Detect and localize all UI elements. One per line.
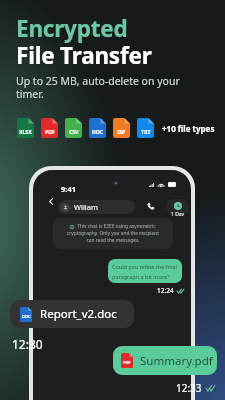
staticText: Summary.pdf [140,353,213,369]
button[interactable]: DOC [10,300,134,328]
staticText: TXT [141,128,151,135]
button[interactable]: Back [46,196,56,206]
staticText: paragraph a bit more? [112,273,170,280]
button[interactable]: Call [144,199,158,213]
staticText: 12:30 [12,336,43,352]
staticText: 12:33 [176,381,202,395]
staticText: DOC [22,314,31,319]
staticText: 12:24 [157,286,174,295]
staticText: Could you refine the final [112,263,178,270]
button[interactable]: Wiliam [58,200,135,214]
staticText: PDF [45,128,55,135]
staticText: PDF [123,360,131,365]
staticText: Wiliam [74,202,98,212]
button[interactable]: PDF [113,346,217,375]
staticText: XLSX [19,128,32,135]
staticText: 1 Day [171,211,185,216]
staticText: ZIP [117,128,126,135]
staticText: Up to 25 MB, auto-delete on your timer. [16,74,180,101]
staticText: File Transfer [16,40,152,71]
staticText: +10 file types [162,123,215,134]
staticText: can read the messages. [86,237,140,244]
staticText: DOC [92,128,104,135]
staticText: Report_v2.doc [40,306,117,322]
staticText: Encrypted [16,13,128,44]
staticText: cryptography. Only you and the recipient [67,230,159,237]
staticText: 9:41 [61,184,76,194]
button[interactable]: 1 Day [167,199,188,216]
staticText: CSV [69,128,79,135]
staticText: This chat is E2EE using asymmetric [77,223,156,230]
